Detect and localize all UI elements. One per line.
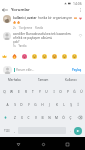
staticText: R (25, 90, 27, 94)
staticText: E (18, 90, 20, 94)
staticText: Y (39, 90, 41, 94)
button[interactable]: X (18, 111, 25, 124)
button[interactable]: Yorum ekle... (14, 66, 71, 74)
button[interactable]: Ü (78, 85, 85, 98)
staticText: Ö (62, 116, 65, 120)
staticText: Ğ (73, 90, 76, 94)
button[interactable]: O (57, 85, 64, 98)
button[interactable]: Send (73, 124, 83, 137)
staticText: Ü (80, 90, 83, 94)
button[interactable]: Ç (67, 111, 74, 124)
button[interactable]: A (4, 98, 11, 111)
button[interactable]: Ğ (71, 85, 78, 98)
button[interactable]: J (46, 98, 53, 111)
button[interactable]: I (50, 85, 57, 98)
button[interactable]: D (18, 98, 25, 111)
button[interactable]: E (15, 85, 22, 98)
button[interactable]: V (32, 111, 39, 124)
staticText: 14:06 (73, 1, 82, 6)
button[interactable]: W (8, 85, 15, 98)
button[interactable]: İ (74, 98, 81, 111)
button[interactable]: L (60, 98, 67, 111)
button[interactable]: Emoji (62, 54, 67, 59)
button[interactable]: C (25, 111, 32, 124)
button[interactable]: P (64, 85, 71, 98)
staticText: W (10, 90, 13, 94)
button[interactable]: Ö (60, 111, 67, 124)
staticText: H (41, 103, 44, 107)
staticText: G (34, 103, 37, 107)
staticText: P (67, 90, 69, 94)
button[interactable]: Emoji (12, 54, 17, 59)
button[interactable]: Y (36, 85, 43, 98)
staticText: A (6, 103, 9, 107)
staticText: F (28, 103, 30, 107)
staticText: I (53, 90, 55, 94)
staticText: D (20, 103, 23, 107)
button[interactable]: kullanici_avatar (0, 15, 85, 30)
staticText: Q (3, 90, 6, 94)
button[interactable]: G (32, 98, 39, 111)
button[interactable]: Emoji (22, 54, 27, 59)
staticText: J (49, 103, 50, 107)
staticText: kullanici_avatar (13, 16, 37, 20)
button[interactable]: R (22, 85, 29, 98)
staticText: Ş (70, 103, 72, 107)
staticText: ofirlitk ve paylaşım albümü (13, 36, 53, 40)
staticText: S (14, 103, 16, 107)
staticText: L (63, 103, 65, 107)
button[interactable]: Back (12, 138, 24, 150)
button[interactable]: Comma (11, 124, 17, 137)
button[interactable]: Paylaş (71, 66, 83, 74)
button[interactable]: ?123 (2, 124, 11, 137)
button[interactable]: Backspace (74, 111, 85, 124)
button[interactable]: N (46, 111, 53, 124)
button[interactable]: Emoji (32, 54, 37, 59)
staticText: acediller Bunadossofukea tek kazandım. (13, 32, 72, 36)
staticText: 2s 1 beğenme Yanıtla (13, 26, 44, 30)
button[interactable]: Q (0, 85, 8, 98)
staticText: Yorumlar (11, 7, 30, 13)
button[interactable]: U (43, 85, 50, 98)
button[interactable]: T (29, 85, 36, 98)
button[interactable]: B (39, 111, 46, 124)
button[interactable]: Emoji (72, 54, 77, 59)
button[interactable]: Ş (67, 98, 74, 111)
button[interactable]: Tamam (29, 74, 57, 85)
button[interactable]: acediller Bunadossofukea tek kazandım. (0, 32, 85, 48)
button[interactable]: K (53, 98, 60, 111)
staticText: Ç (69, 116, 72, 120)
staticText: Z (14, 116, 16, 120)
staticText: C (27, 116, 30, 120)
button[interactable]: Shift (0, 111, 11, 124)
button[interactable]: H (39, 98, 46, 111)
button[interactable]: Emoji (42, 54, 47, 59)
button[interactable]: Back (0, 6, 10, 13)
staticText: çok? (13, 40, 20, 44)
staticText: Kullanıcı (65, 78, 77, 82)
staticText: K (56, 103, 58, 107)
button[interactable]: F (25, 98, 32, 111)
button[interactable]: Emoji (52, 54, 57, 59)
button[interactable]: Recent apps (61, 138, 73, 150)
staticText: U (45, 90, 48, 94)
staticText: O (59, 90, 62, 94)
staticText: ?123 (4, 129, 10, 133)
button[interactable]: Like comment (77, 15, 83, 21)
staticText: M (55, 116, 58, 120)
button[interactable]: Emoji (2, 54, 7, 59)
button[interactable]: M (53, 111, 60, 124)
button[interactable]: Merhaba (0, 74, 29, 85)
button[interactable]: Like comment (77, 32, 83, 38)
staticText: V (35, 116, 37, 120)
staticText: X (21, 116, 23, 120)
staticText: İ (77, 103, 79, 107)
button[interactable]: S (11, 98, 18, 111)
button[interactable]: More options (76, 6, 85, 13)
button[interactable]: Kullanıcı (57, 74, 85, 85)
button[interactable]: Home (37, 138, 49, 150)
button[interactable]: Z (11, 111, 18, 124)
staticText: , (14, 129, 15, 133)
